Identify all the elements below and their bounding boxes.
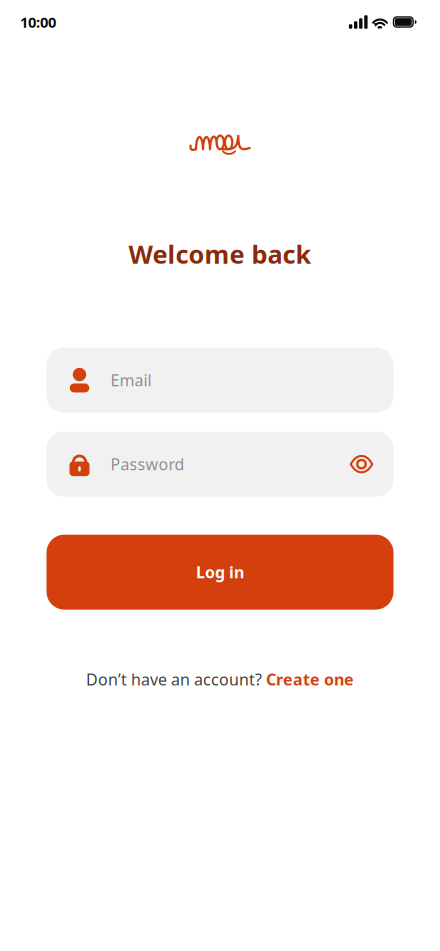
staticText: Password xyxy=(110,453,184,475)
staticText: Email xyxy=(110,369,151,391)
staticText: Welcome back xyxy=(128,237,311,271)
button[interactable]: Log in xyxy=(46,535,393,610)
staticText: Create one xyxy=(266,669,354,690)
staticText: Log in xyxy=(196,561,244,583)
staticText: 10:00 xyxy=(20,12,56,32)
button[interactable]: Create one xyxy=(266,669,354,690)
button[interactable]: Show password xyxy=(338,441,384,487)
staticText: Don’t have an account? xyxy=(86,669,266,690)
